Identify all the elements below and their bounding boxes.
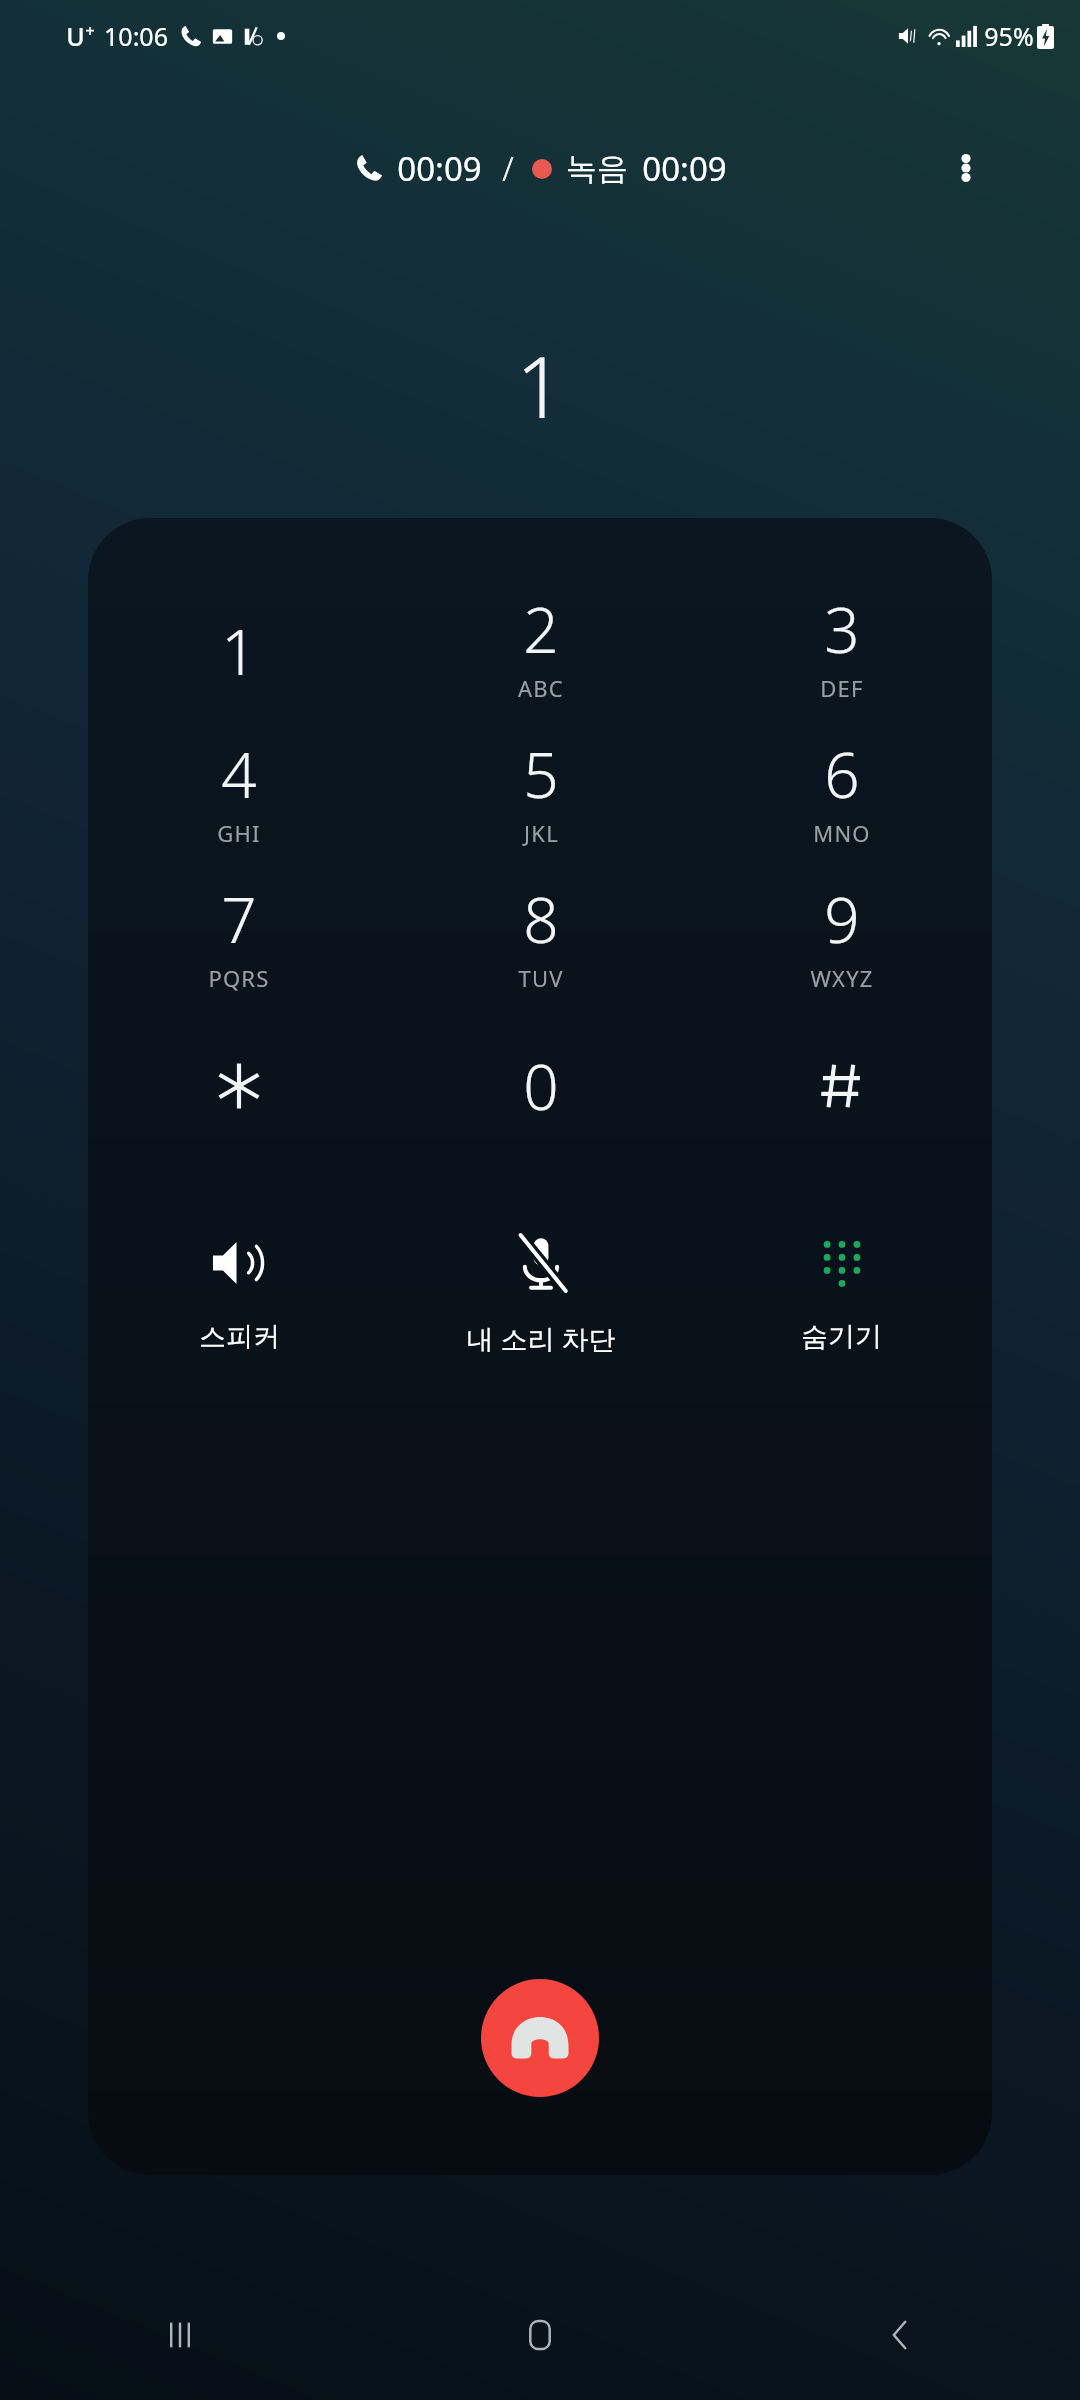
button[interactable]: 7 bbox=[88, 868, 390, 1013]
button[interactable]: 내 소리 차단 bbox=[390, 1206, 691, 1396]
staticText: DEF bbox=[820, 673, 864, 703]
staticText: U bbox=[66, 19, 85, 53]
staticText: 숨기기 bbox=[801, 1320, 882, 1354]
staticText: 9 bbox=[824, 877, 860, 961]
staticText: + bbox=[85, 20, 95, 42]
staticText: 10:06 bbox=[104, 19, 168, 53]
button[interactable]: 0 bbox=[390, 1013, 691, 1158]
staticText: 8 bbox=[523, 877, 559, 961]
staticText: 4 bbox=[221, 732, 257, 816]
staticText: 1 bbox=[221, 609, 257, 693]
staticText: ABC bbox=[518, 673, 564, 703]
button[interactable] bbox=[88, 1013, 390, 1158]
staticText: 7 bbox=[221, 877, 257, 961]
staticText: 녹음 bbox=[566, 149, 628, 188]
button[interactable]: End call bbox=[481, 1979, 599, 2097]
button[interactable]: Recents bbox=[0, 2270, 360, 2400]
staticText: 0 bbox=[523, 1044, 559, 1128]
button[interactable]: 2 bbox=[390, 578, 691, 723]
button[interactable]: 5 bbox=[390, 723, 691, 868]
staticText: 6 bbox=[824, 732, 860, 816]
staticText: 2 bbox=[523, 587, 559, 671]
button[interactable]: 스피커 bbox=[88, 1206, 390, 1396]
staticText: PQRS bbox=[208, 963, 270, 993]
button[interactable]: Home bbox=[360, 2270, 720, 2400]
staticText: 1 bbox=[516, 328, 564, 442]
staticText: JKL bbox=[524, 818, 559, 848]
button[interactable]: 3 bbox=[691, 578, 992, 723]
button[interactable]: 4 bbox=[88, 723, 390, 868]
staticText: MNO bbox=[813, 818, 871, 848]
button[interactable]: 8 bbox=[390, 868, 691, 1013]
staticText: 5 bbox=[523, 732, 559, 816]
staticText: GHI bbox=[217, 818, 261, 848]
staticText: 00:09 bbox=[642, 146, 727, 191]
button[interactable]: 6 bbox=[691, 723, 992, 868]
staticText: 00:09 bbox=[397, 146, 482, 191]
button[interactable]: More options bbox=[930, 132, 1002, 204]
staticText: / bbox=[502, 146, 514, 191]
button[interactable]: 숨기기 bbox=[691, 1206, 992, 1396]
staticText: TUV bbox=[518, 963, 564, 993]
staticText: 95% bbox=[984, 19, 1034, 53]
button[interactable]: 9 bbox=[691, 868, 992, 1013]
staticText: 3 bbox=[824, 587, 860, 671]
button[interactable]: Back bbox=[720, 2270, 1080, 2400]
staticText: 내 소리 차단 bbox=[466, 1320, 616, 1357]
button[interactable] bbox=[691, 1013, 992, 1158]
button[interactable]: 1 bbox=[88, 578, 390, 723]
staticText: 스피커 bbox=[199, 1320, 280, 1354]
staticText: WXYZ bbox=[810, 963, 874, 993]
